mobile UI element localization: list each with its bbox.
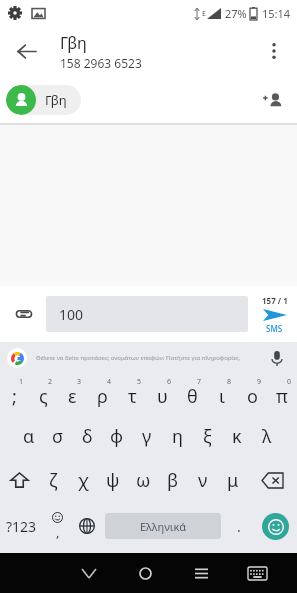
button[interactable]: Google <box>7 348 27 368</box>
button[interactable]: . <box>224 503 253 549</box>
button[interactable]: γ <box>132 415 162 458</box>
button[interactable]: ξ <box>192 415 222 458</box>
button[interactable]: 7 <box>177 374 207 415</box>
button[interactable]: λ <box>252 415 282 458</box>
staticText: π <box>276 384 288 409</box>
button[interactable]: Send SMS <box>252 295 297 334</box>
button[interactable]: Shift <box>0 458 39 503</box>
button[interactable]: 5 <box>117 374 147 415</box>
staticText: 6 <box>167 377 172 387</box>
button[interactable]: 4 <box>87 374 117 415</box>
staticText: υ <box>157 384 168 409</box>
staticText: α <box>23 424 35 449</box>
staticText: . <box>237 517 241 536</box>
staticText: ε <box>68 384 77 409</box>
staticText: θ <box>187 384 198 409</box>
staticText: 1 <box>19 377 24 387</box>
staticText: ν <box>198 468 208 493</box>
staticText: 27% <box>225 6 247 21</box>
staticText: 5 <box>137 377 142 387</box>
button[interactable]: μ <box>218 458 248 503</box>
button[interactable]: Attach <box>4 294 44 334</box>
button[interactable]: Ελληνικά <box>105 513 221 539</box>
staticText: ; <box>12 384 17 409</box>
button[interactable]: ?123 <box>0 503 43 549</box>
staticText: σ <box>52 424 64 449</box>
staticText: 4 <box>107 377 112 387</box>
staticText: 0 <box>287 377 292 387</box>
button[interactable]: Emoji and comma <box>43 503 72 549</box>
staticText: , <box>56 523 60 541</box>
button[interactable]: Add recipient <box>253 81 291 119</box>
staticText: ξ <box>203 424 212 449</box>
staticText: Γβη <box>60 32 87 54</box>
staticText: E <box>202 9 206 19</box>
staticText: Θέλετε να δείτε προτάσεις ονομάτων επαφώ… <box>36 354 241 362</box>
staticText: 100 <box>59 305 84 324</box>
button[interactable]: Hide keyboard <box>60 553 117 593</box>
staticText: δ <box>82 424 93 449</box>
staticText: ?123 <box>6 517 37 536</box>
staticText: 2 <box>48 377 53 387</box>
button[interactable]: β <box>158 458 188 503</box>
button[interactable]: Γβη <box>6 85 81 115</box>
button[interactable]: Emoji <box>253 503 297 549</box>
button[interactable]: Switch keyboard <box>229 553 285 593</box>
staticText: η <box>172 424 183 449</box>
button[interactable]: 2 <box>29 374 58 415</box>
staticText: 3 <box>77 377 82 387</box>
staticText: ω <box>136 468 151 493</box>
staticText: 15:14 <box>262 6 291 21</box>
staticText: 157 / 1 <box>262 295 288 306</box>
button[interactable]: 8 <box>207 374 237 415</box>
button[interactable]: More options <box>255 32 293 70</box>
staticText: ς <box>39 384 48 409</box>
staticText: γ <box>142 424 152 449</box>
staticText: 7 <box>197 377 202 387</box>
button[interactable]: σ <box>43 415 72 458</box>
button[interactable]: 6 <box>147 374 177 415</box>
staticText: SMS <box>266 323 283 334</box>
button[interactable]: α <box>14 415 43 458</box>
staticText: κ <box>232 424 242 449</box>
staticText: ρ <box>97 384 108 409</box>
button[interactable]: 100 <box>46 296 248 332</box>
button[interactable]: φ <box>102 415 132 458</box>
staticText: ι <box>219 384 225 409</box>
staticText: Ελληνικά <box>140 519 187 534</box>
staticText: ζ <box>49 468 58 493</box>
button[interactable]: Voice input <box>265 346 289 370</box>
button[interactable]: 9 <box>237 374 267 415</box>
button[interactable]: Change language <box>72 503 102 549</box>
button[interactable]: ζ <box>39 458 68 503</box>
staticText: ψ <box>106 468 120 493</box>
staticText: μ <box>227 468 239 493</box>
staticText: λ <box>262 424 272 449</box>
staticText: 9 <box>257 377 262 387</box>
button[interactable]: η <box>162 415 192 458</box>
button[interactable]: Home <box>117 553 173 593</box>
staticText: τ <box>128 384 137 409</box>
button[interactable]: ν <box>188 458 218 503</box>
button[interactable]: Delete <box>248 458 297 503</box>
button[interactable]: δ <box>72 415 102 458</box>
button[interactable]: κ <box>222 415 252 458</box>
staticText: 8 <box>227 377 232 387</box>
staticText: β <box>167 468 179 493</box>
button[interactable]: 3 <box>58 374 87 415</box>
staticText: Γβη <box>45 91 67 109</box>
staticText: φ <box>110 424 124 449</box>
staticText: 158 2963 6523 <box>60 55 142 71</box>
button[interactable]: ψ <box>98 458 128 503</box>
button[interactable]: 1 <box>0 374 29 415</box>
button[interactable]: Back <box>6 31 46 71</box>
staticText: χ <box>78 468 89 493</box>
button[interactable]: ω <box>128 458 158 503</box>
button[interactable]: χ <box>68 458 98 503</box>
button[interactable]: Recent apps <box>173 553 229 593</box>
button[interactable]: 0 <box>267 374 297 415</box>
staticText: ο <box>247 384 258 409</box>
